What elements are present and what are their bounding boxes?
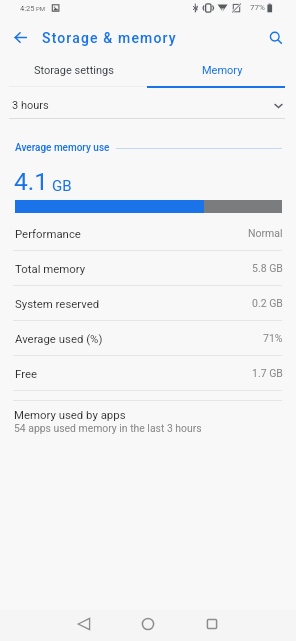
staticText: Average memory use bbox=[15, 142, 110, 154]
staticText: GB bbox=[52, 177, 72, 195]
staticText: Free bbox=[15, 367, 37, 380]
button[interactable]: 3 hours bbox=[0, 89, 296, 118]
staticText: 1.7 GB bbox=[252, 367, 283, 379]
button[interactable]: Recent apps bbox=[195, 610, 228, 637]
button[interactable]: Average used (%) bbox=[0, 321, 296, 355]
button[interactable]: Storage settings bbox=[0, 55, 148, 86]
staticText: 77% bbox=[250, 3, 265, 12]
staticText: 5.8 GB bbox=[252, 262, 283, 274]
staticText: 4:25 bbox=[20, 4, 35, 13]
button[interactable]: Total memory bbox=[0, 251, 296, 285]
staticText: Average used (%) bbox=[15, 332, 103, 345]
button[interactable]: Memory bbox=[148, 55, 296, 86]
button[interactable]: Back bbox=[67, 610, 100, 637]
staticText: System reserved bbox=[15, 297, 100, 310]
staticText: Normal bbox=[248, 227, 283, 239]
staticText: 3 hours bbox=[12, 99, 49, 112]
button[interactable]: Memory used by apps bbox=[0, 401, 296, 444]
staticText: Storage & memory bbox=[42, 30, 177, 46]
button[interactable]: Search bbox=[258, 20, 293, 55]
staticText: PM bbox=[36, 5, 46, 12]
button[interactable]: Back bbox=[0, 20, 41, 55]
button[interactable]: System reserved bbox=[0, 286, 296, 320]
button[interactable]: Performance bbox=[0, 216, 296, 250]
button[interactable]: Free bbox=[0, 356, 296, 390]
staticText: 54 apps used memory in the last 3 hours bbox=[14, 422, 202, 434]
button[interactable]: Home bbox=[131, 610, 164, 637]
staticText: 0.2 GB bbox=[252, 297, 283, 309]
staticText: Performance bbox=[15, 227, 81, 240]
staticText: Memory bbox=[202, 64, 243, 77]
staticText: 71% bbox=[263, 332, 283, 344]
staticText: Total memory bbox=[15, 262, 86, 275]
staticText: Memory used by apps bbox=[14, 408, 126, 421]
staticText: 4.1 bbox=[14, 167, 48, 196]
staticText: Storage settings bbox=[34, 64, 114, 77]
